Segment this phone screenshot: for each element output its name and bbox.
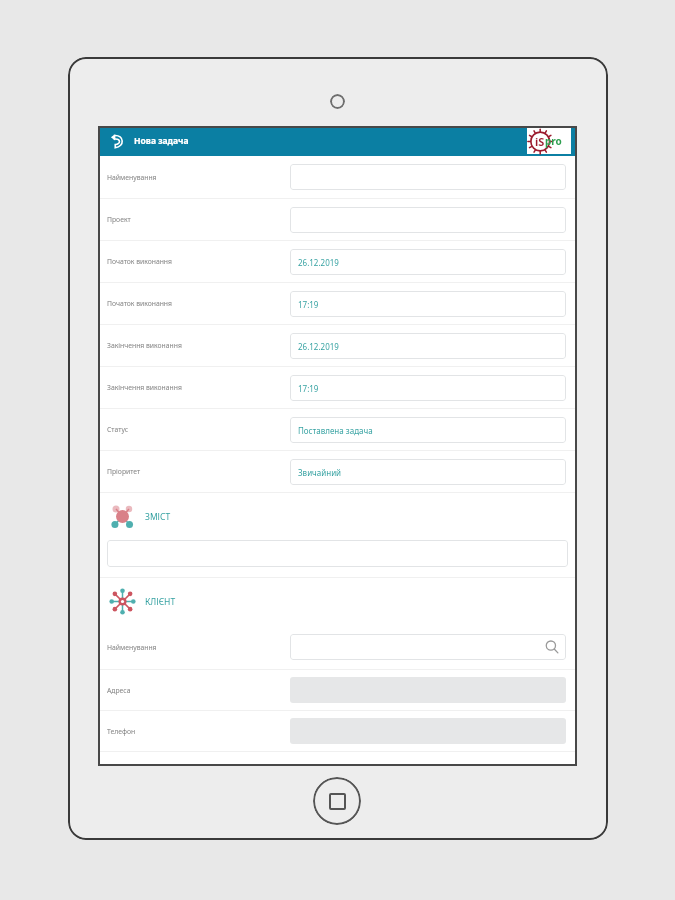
staticText: Звичайний xyxy=(298,467,342,478)
button[interactable]: Адреса xyxy=(98,670,577,710)
staticText: КЛІЄНТ xyxy=(145,596,176,608)
staticText: Початок виконання xyxy=(107,257,172,266)
button[interactable]: Пріоритет xyxy=(98,451,577,492)
staticText: Поставлена задача xyxy=(298,425,373,436)
button[interactable] xyxy=(107,540,568,567)
button[interactable]: Початок виконання xyxy=(98,241,577,282)
button[interactable]: Back xyxy=(106,130,128,152)
staticText: iS xyxy=(535,134,545,149)
staticText: ЗМІСТ xyxy=(145,511,171,523)
staticText: Початок виконання xyxy=(107,299,172,308)
staticText: Найменування xyxy=(107,173,157,182)
staticText: Статус xyxy=(107,425,128,434)
staticText: pro xyxy=(545,134,562,148)
button[interactable]: Проект xyxy=(98,199,577,240)
button[interactable]: Початок виконання xyxy=(98,283,577,324)
staticText: Пріоритет xyxy=(107,467,141,476)
button[interactable]: Закінчення виконання xyxy=(98,325,577,366)
button[interactable]: Закінчення виконання xyxy=(98,367,577,408)
staticText: Закінчення виконання xyxy=(107,341,182,350)
button[interactable]: Телефон xyxy=(98,711,577,751)
staticText: Нова задача xyxy=(134,135,189,147)
staticText: Проект xyxy=(107,215,131,224)
button[interactable]: Статус xyxy=(98,409,577,450)
staticText: Найменування xyxy=(107,643,157,652)
button[interactable]: ЗМІСТ xyxy=(109,493,577,540)
staticText: 17:19 xyxy=(298,383,319,394)
button[interactable]: IS-pro logo xyxy=(527,128,571,154)
button[interactable]: КЛІЄНТ xyxy=(109,578,577,625)
staticText: 26.12.2019 xyxy=(298,341,339,352)
staticText: Телефон xyxy=(107,727,136,736)
staticText: Адреса xyxy=(107,686,131,695)
staticText: Закінчення виконання xyxy=(107,383,182,392)
staticText: 17:19 xyxy=(298,299,319,310)
button[interactable]: Home xyxy=(313,777,361,825)
button[interactable]: Search xyxy=(545,640,559,654)
staticText: 26.12.2019 xyxy=(298,257,339,268)
button[interactable]: Найменування xyxy=(98,625,577,669)
button[interactable]: Найменування xyxy=(98,156,577,198)
